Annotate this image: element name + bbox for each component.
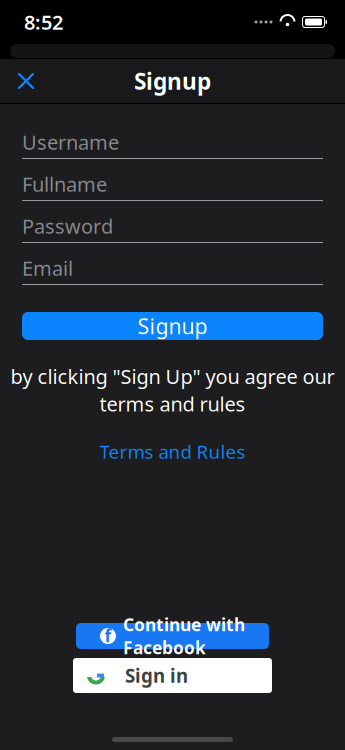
staticText: Username	[22, 129, 119, 155]
staticText: Signup	[137, 312, 207, 340]
button[interactable]: Terms and Rules	[93, 436, 251, 467]
button[interactable]: f	[76, 623, 269, 649]
staticText: Password	[22, 213, 113, 239]
staticText: Email	[22, 255, 73, 281]
button[interactable]: Signup	[22, 312, 323, 340]
staticText: Terms and Rules	[99, 439, 245, 464]
staticText: Continue with Facebook	[123, 613, 245, 659]
staticText: by clicking "Sign Up" you agree our	[10, 363, 334, 390]
button[interactable]: Sign in	[73, 658, 272, 693]
button[interactable]: Close	[4, 59, 48, 103]
staticText: terms and rules	[99, 391, 245, 417]
staticText: Fullname	[22, 171, 107, 197]
staticText: Sign in	[125, 663, 188, 688]
staticText: Signup	[134, 66, 211, 96]
staticText: f	[104, 624, 111, 647]
staticText: 8:52	[24, 9, 63, 35]
